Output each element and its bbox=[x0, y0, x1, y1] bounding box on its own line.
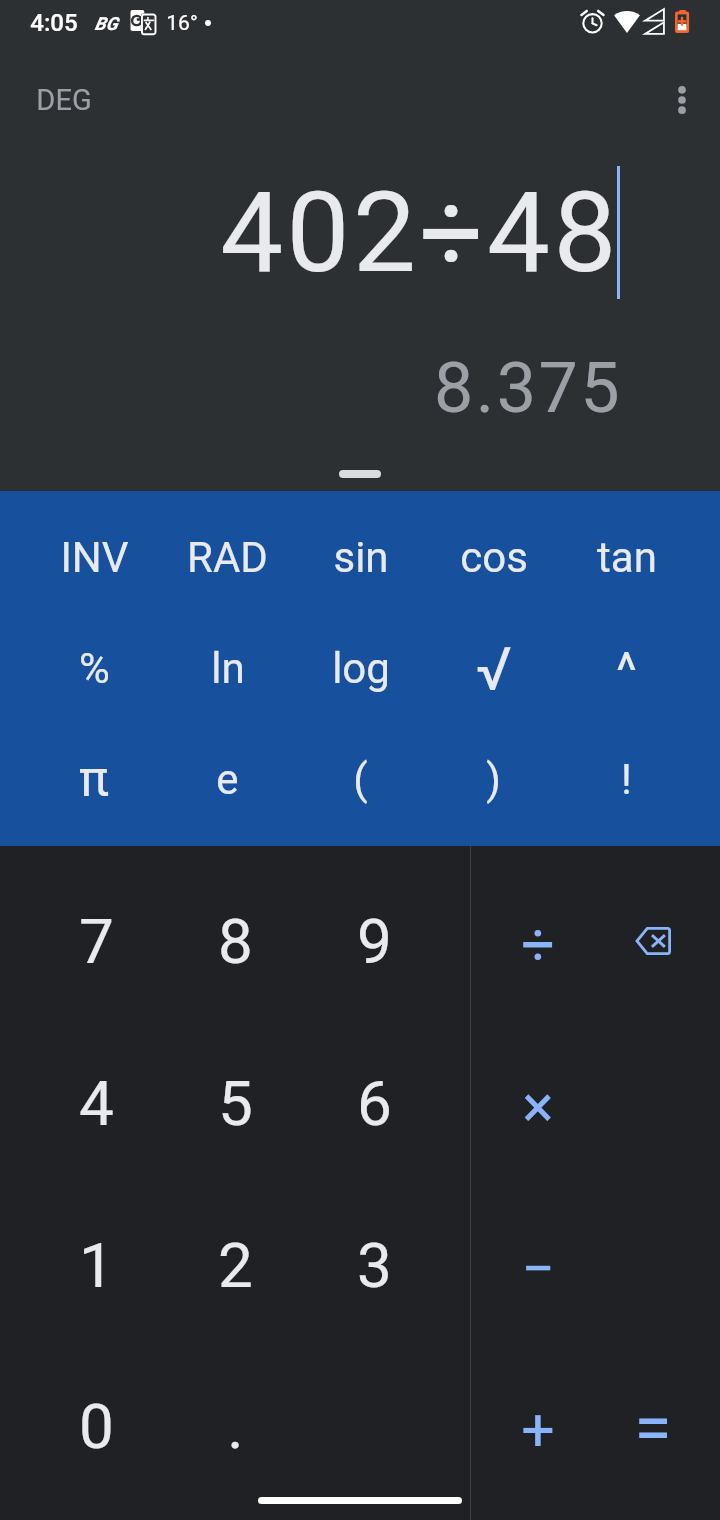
staticText: RAD bbox=[187, 533, 268, 582]
staticText: tan bbox=[597, 533, 657, 582]
staticText: − bbox=[521, 1234, 555, 1303]
staticText: 7 bbox=[79, 905, 114, 978]
button[interactable]: = bbox=[595, 1346, 710, 1506]
button[interactable]: ! bbox=[560, 724, 693, 835]
staticText: 9 bbox=[357, 905, 392, 978]
button[interactable]: 9 bbox=[305, 860, 444, 1022]
button[interactable]: log bbox=[294, 613, 427, 724]
staticText: + bbox=[521, 1395, 555, 1464]
button[interactable]: 7 bbox=[26, 860, 166, 1022]
button[interactable]: INV bbox=[27, 502, 161, 613]
staticText: INV bbox=[60, 533, 129, 582]
button[interactable]: 1 bbox=[26, 1184, 166, 1346]
staticText: 16° bbox=[166, 11, 198, 36]
staticText: 4:05 bbox=[30, 9, 78, 37]
other: Backspace bbox=[635, 927, 671, 955]
staticText: ) bbox=[486, 755, 501, 804]
button[interactable]: sin bbox=[294, 502, 427, 613]
staticText: π bbox=[79, 750, 109, 809]
button[interactable]: 5 bbox=[166, 1022, 305, 1184]
button[interactable]: DEG bbox=[18, 73, 110, 127]
staticText: ^ bbox=[616, 642, 637, 701]
button[interactable]: ( bbox=[294, 724, 427, 835]
button[interactable]: − bbox=[481, 1184, 595, 1346]
staticText: ÷ bbox=[521, 910, 555, 979]
button[interactable]: RAD bbox=[161, 502, 294, 613]
staticText: sin bbox=[333, 533, 389, 582]
staticText: DEG bbox=[36, 83, 92, 117]
button[interactable]: ) bbox=[427, 724, 560, 835]
button[interactable]: 8 bbox=[166, 860, 305, 1022]
staticText: 0 bbox=[79, 1390, 114, 1463]
staticText: BG bbox=[94, 13, 118, 34]
staticText: 4 bbox=[79, 1067, 114, 1140]
button[interactable]: ^ bbox=[560, 613, 693, 724]
staticText: 8.375 bbox=[434, 347, 622, 429]
button[interactable] bbox=[305, 1346, 444, 1506]
button[interactable]: Backspace bbox=[595, 860, 710, 1022]
button[interactable]: 2 bbox=[166, 1184, 305, 1346]
staticText: % bbox=[79, 644, 110, 693]
staticText: log bbox=[332, 644, 390, 693]
staticText: 8 bbox=[218, 905, 253, 978]
staticText: ! bbox=[621, 755, 632, 804]
button[interactable]: e bbox=[161, 724, 294, 835]
staticText: = bbox=[634, 1388, 672, 1468]
button[interactable]: × bbox=[481, 1022, 595, 1184]
button[interactable]: ÷ bbox=[481, 860, 595, 1022]
button[interactable]: % bbox=[27, 613, 161, 724]
button[interactable]: √ bbox=[427, 613, 560, 724]
button[interactable]: ln bbox=[161, 613, 294, 724]
button[interactable]: 4 bbox=[26, 1022, 166, 1184]
button[interactable]: More options bbox=[649, 65, 715, 131]
staticText: ln bbox=[211, 644, 245, 693]
staticText: e bbox=[216, 755, 239, 804]
button[interactable]: cos bbox=[427, 502, 560, 613]
button[interactable]: tan bbox=[560, 502, 693, 613]
button[interactable]: 3 bbox=[305, 1184, 444, 1346]
staticText: 402÷48 bbox=[220, 167, 620, 298]
button[interactable]: + bbox=[481, 1346, 595, 1506]
staticText: cos bbox=[460, 533, 528, 582]
staticText: ( bbox=[353, 755, 368, 804]
staticText: 2 bbox=[218, 1229, 253, 1302]
button[interactable]: 0 bbox=[26, 1346, 166, 1506]
staticText: √ bbox=[476, 634, 512, 704]
button[interactable]: . bbox=[166, 1346, 305, 1506]
staticText: 1 bbox=[79, 1229, 114, 1302]
staticText: 5 bbox=[218, 1067, 253, 1140]
staticText: . bbox=[227, 1390, 244, 1463]
staticText: 6 bbox=[357, 1067, 392, 1140]
button[interactable]: π bbox=[27, 724, 161, 835]
staticText: 3 bbox=[357, 1229, 392, 1302]
button[interactable]: Expand keypad bbox=[0, 457, 720, 491]
button[interactable]: 6 bbox=[305, 1022, 444, 1184]
staticText: × bbox=[522, 1072, 554, 1141]
